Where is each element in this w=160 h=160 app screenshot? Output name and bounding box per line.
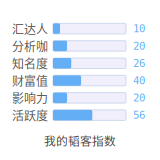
button[interactable]: 活跃度 [12,106,160,124]
staticText: 40 [133,74,145,87]
button[interactable]: 知名度 [12,55,160,72]
staticText: 财富值 [12,72,48,89]
staticText: 影响力 [12,89,48,107]
staticText: 10 [133,22,145,35]
staticText: 20 [133,40,145,52]
button[interactable]: 分析咖 [12,37,160,55]
staticText: 我的韬客指数 [44,132,116,149]
staticText: 活跃度 [12,106,48,124]
button[interactable]: 影响力 [12,89,160,106]
button[interactable]: 汇达人 [12,20,160,37]
staticText: 分析咖 [12,37,48,55]
staticText: 知名度 [12,55,48,72]
staticText: 26 [133,57,145,69]
staticText: 56 [133,109,145,121]
button[interactable]: 财富值 [12,72,160,89]
staticText: 20 [133,92,145,104]
staticText: 汇达人 [12,20,48,37]
